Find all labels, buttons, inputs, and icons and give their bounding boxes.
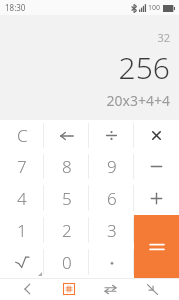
staticText: 6 <box>107 187 117 210</box>
button[interactable]: Plus <box>134 182 179 214</box>
staticText: 18:30 <box>5 2 26 13</box>
staticText: 9 <box>107 155 117 178</box>
button[interactable]: Collapse <box>139 278 165 300</box>
button[interactable]: Multiply <box>134 120 179 151</box>
staticText: 20x3+4+4 <box>106 91 170 110</box>
button[interactable]: Square root <box>0 246 44 278</box>
staticText: 0 <box>62 251 72 274</box>
button[interactable]: Back <box>14 278 40 300</box>
staticText: C <box>17 124 28 147</box>
staticText: 5 <box>62 187 72 210</box>
button[interactable]: Minus <box>134 151 179 182</box>
button[interactable]: Divide <box>89 120 134 151</box>
button[interactable]: 8 <box>44 151 89 182</box>
staticText: 3 <box>107 219 117 242</box>
staticText: 256 <box>118 47 170 88</box>
staticText: 1 <box>17 219 27 242</box>
staticText: 4 <box>17 187 27 210</box>
button[interactable]: 9 <box>89 151 134 182</box>
staticText: 2 <box>62 219 72 242</box>
button[interactable]: C <box>0 120 44 151</box>
staticText: 32 <box>157 30 170 45</box>
button[interactable]: 3 <box>89 214 134 246</box>
button[interactable]: 4 <box>0 182 44 214</box>
staticText: 7 <box>17 155 27 178</box>
button[interactable]: 1 <box>0 214 44 246</box>
staticText: 100 <box>148 3 161 13</box>
button[interactable]: Convert <box>97 278 123 300</box>
button[interactable]: 6 <box>89 182 134 214</box>
button[interactable]: 0 <box>44 246 89 278</box>
button[interactable]: 5 <box>44 182 89 214</box>
button[interactable]: Backspace <box>44 120 89 151</box>
button[interactable]: Equals <box>134 215 179 278</box>
button[interactable]: 7 <box>0 151 44 182</box>
button[interactable]: 2 <box>44 214 89 246</box>
button[interactable]: Calculator <box>56 278 82 300</box>
button[interactable]: Decimal point <box>89 246 134 278</box>
staticText: 8 <box>62 155 72 178</box>
